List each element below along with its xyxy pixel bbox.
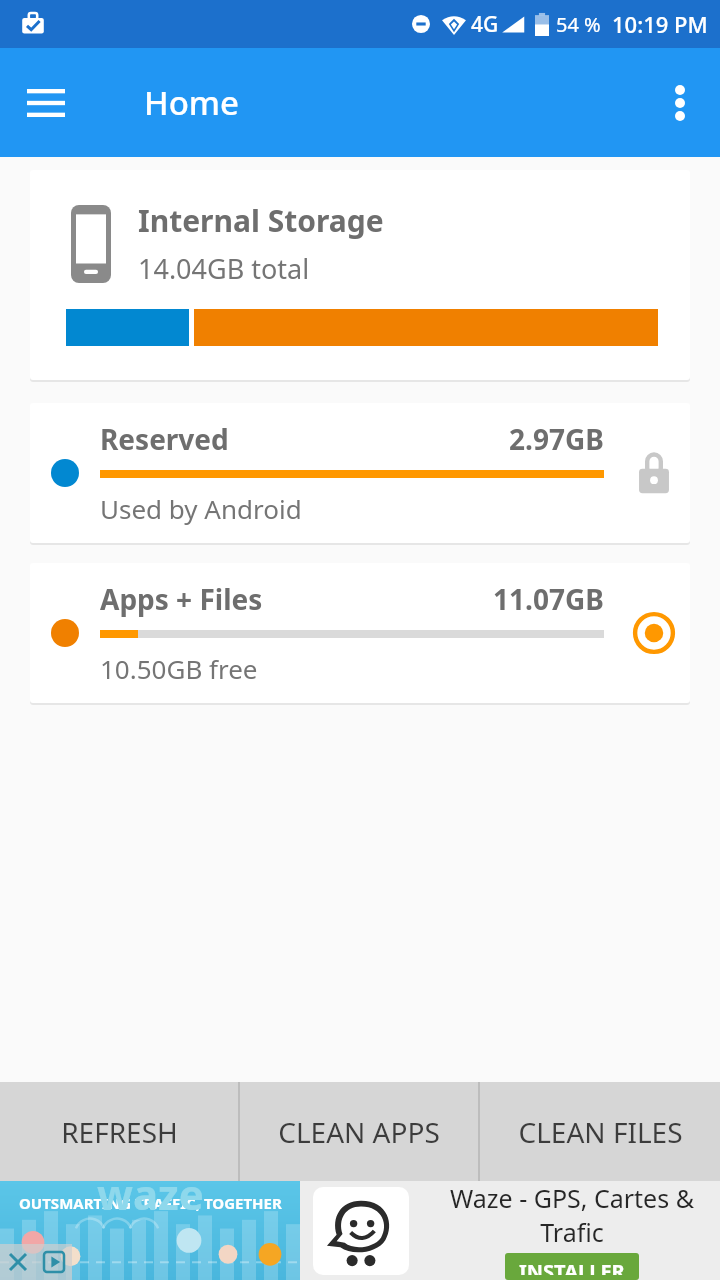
staticText: 4G	[471, 10, 499, 39]
button[interactable]: Reserved	[30, 403, 690, 543]
staticText: 54 %	[556, 11, 601, 38]
button[interactable]: Close ad	[0, 1244, 36, 1280]
staticText: Internal Storage	[138, 200, 384, 241]
button[interactable]: Selected	[618, 563, 690, 703]
button[interactable]: Open navigation drawer	[18, 75, 74, 131]
button[interactable]: CLEAN FILES	[480, 1082, 720, 1181]
staticText: 14.04GB total	[138, 250, 310, 287]
staticText: CLEAN APPS	[278, 1113, 440, 1151]
staticText: CLEAN FILES	[518, 1113, 683, 1151]
staticText: Apps + Files	[100, 580, 263, 618]
staticText: OUTSMARTING TRAFFIC, TOGETHER	[19, 1193, 282, 1213]
staticText: REFRESH	[61, 1113, 178, 1151]
button[interactable]: Locked	[618, 403, 690, 543]
button[interactable]: Internal Storage	[30, 170, 690, 380]
staticText: waze	[97, 1165, 204, 1222]
staticText: Waze - GPS, Cartes & Trafic	[430, 1181, 714, 1249]
button[interactable]: REFRESH	[0, 1082, 238, 1181]
staticText: 10:19 PM	[612, 9, 708, 39]
staticText: 10.50GB free	[100, 651, 258, 686]
button[interactable]: CLEAN APPS	[240, 1082, 478, 1181]
staticText: 11.07GB	[493, 580, 604, 618]
button[interactable]: INSTALLER	[505, 1253, 639, 1280]
button[interactable]: Ad info	[36, 1244, 72, 1280]
staticText: Used by Android	[100, 491, 302, 526]
button[interactable]: More options	[652, 75, 708, 131]
staticText: INSTALLER	[519, 1258, 625, 1275]
staticText: Home	[144, 80, 240, 125]
staticText: Reserved	[100, 420, 229, 458]
button[interactable]: OUTSMARTING TRAFFIC, TOGETHER	[0, 1181, 720, 1280]
staticText: 2.97GB	[509, 420, 604, 458]
button[interactable]: Apps + Files	[30, 563, 690, 703]
